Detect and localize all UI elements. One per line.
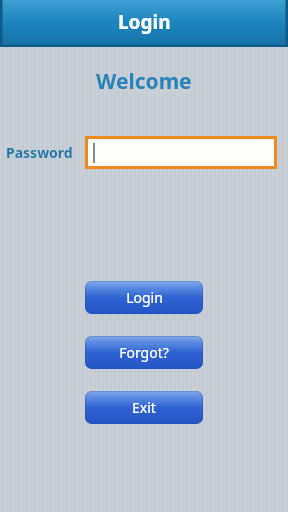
staticText: Exit xyxy=(132,398,156,417)
staticText: Password xyxy=(6,143,73,162)
staticText: Forgot? xyxy=(119,343,169,362)
button[interactable]: Login xyxy=(85,281,203,314)
button[interactable]: Exit xyxy=(85,391,203,424)
staticText: Welcome xyxy=(96,67,192,96)
staticText: Login xyxy=(118,9,171,35)
button[interactable]: Forgot? xyxy=(85,336,203,369)
staticText: Login xyxy=(126,288,163,307)
button[interactable] xyxy=(88,139,274,166)
